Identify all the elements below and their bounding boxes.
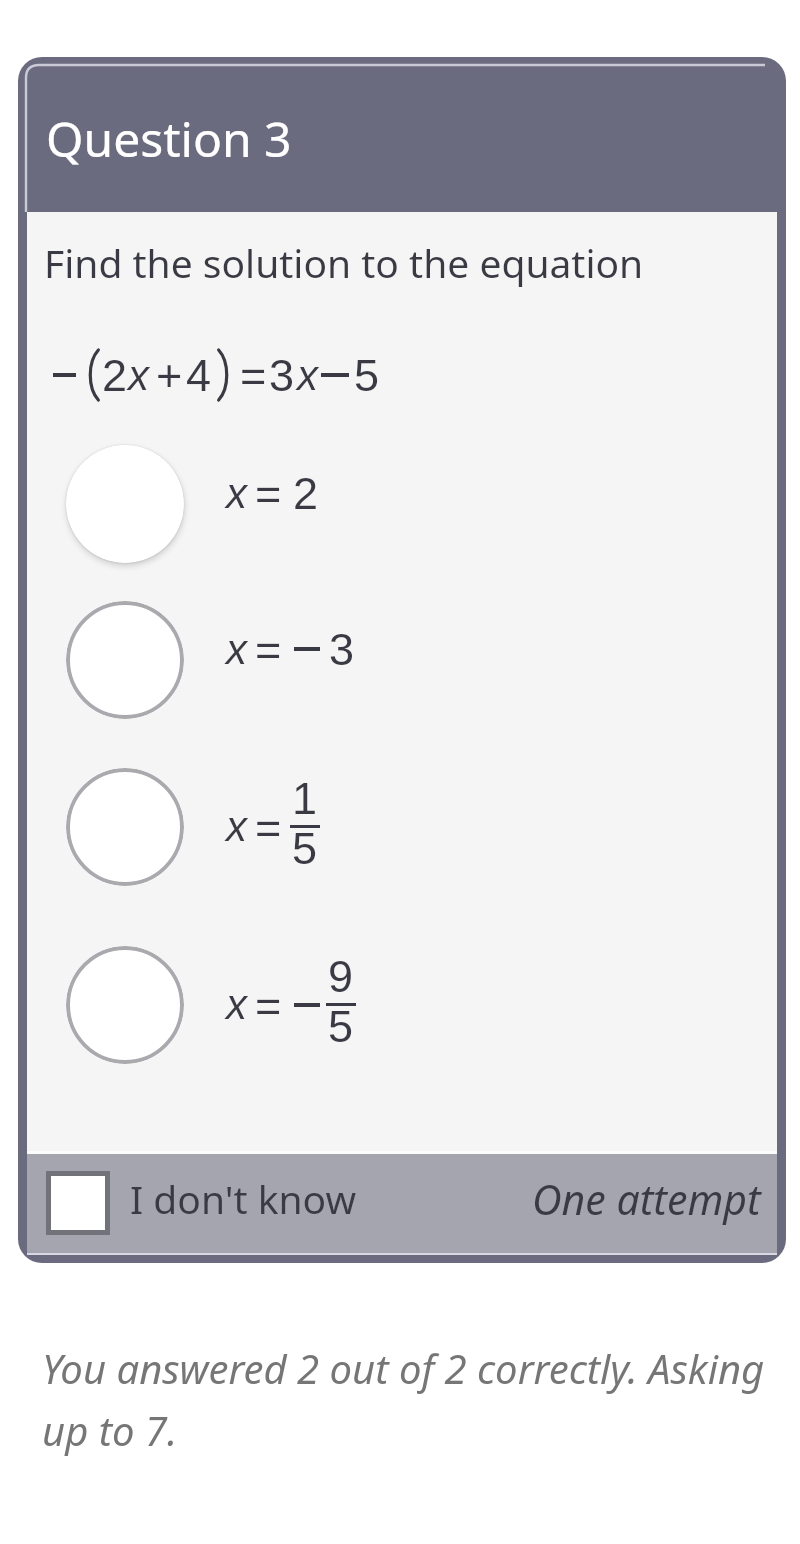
staticText: 1 [292,773,318,816]
staticText: 4 [186,350,212,400]
staticText: Question 3 [46,106,292,171]
staticText: You answered 2 out of 2 correctly. Askin… [42,1341,782,1457]
button[interactable]: I don't know [27,1151,777,1254]
staticText: 2 [102,350,128,400]
staticText: 9 [328,951,354,994]
staticText: 5 [354,350,380,400]
staticText: x [226,803,247,850]
staticText: + [156,350,183,400]
staticText: 3 [329,624,355,674]
button[interactable]: Answer option x equals minus 3 [30,574,770,724]
button[interactable]: Answer option x equals minus nine fifths [30,929,770,1079]
staticText: x [226,626,247,673]
staticText: = [255,468,282,518]
staticText: Find the solution to the equation [44,236,644,289]
staticText: x [226,470,247,517]
staticText: One attempt [532,1171,761,1227]
staticText: 5 [292,823,318,866]
staticText: I don't know [130,1172,357,1225]
staticText: = [255,802,282,852]
staticText: x [297,352,318,399]
staticText: x [226,981,247,1028]
button[interactable]: Answer option x equals one fifth [30,751,770,901]
staticText: = [240,350,267,400]
staticText: x [128,352,149,399]
staticText: 5 [328,1001,354,1044]
button[interactable]: Answer option x equals 2 [30,418,770,568]
staticText: 3 [269,350,295,400]
staticText: 2 [293,468,319,518]
staticText: = [255,980,282,1030]
staticText: = [255,624,282,674]
